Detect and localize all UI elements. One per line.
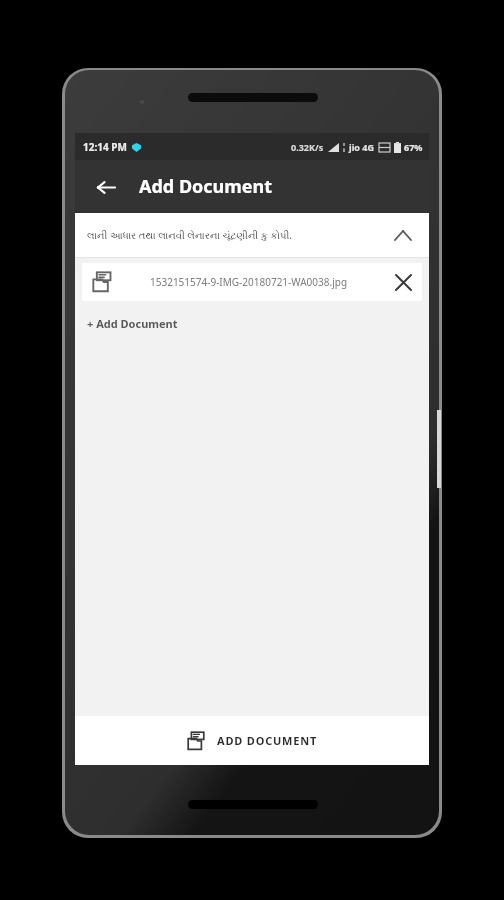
staticText: jio 4G xyxy=(349,141,375,153)
button[interactable]: Back xyxy=(87,169,123,205)
button[interactable]: ADD DOCUMENT xyxy=(75,716,429,765)
staticText: ADD DOCUMENT xyxy=(217,733,318,748)
button[interactable]: લાની આધાર તથા લાનવી લેનારના ચૂંટણીની કુ … xyxy=(75,213,429,257)
staticText: Add Document xyxy=(139,174,273,199)
button[interactable]: + Add Document xyxy=(75,306,429,340)
staticText: 67% xyxy=(404,141,423,153)
staticText: + Add Document xyxy=(87,316,178,331)
staticText: 0.32K/s xyxy=(291,141,324,153)
other: Collapse xyxy=(389,221,417,249)
button[interactable]: Remove document xyxy=(384,263,422,301)
staticText: 1532151574-9-IMG-20180721-WA0038.jpg xyxy=(150,275,348,289)
staticText: લાની આધાર તથા લાનવી લેનારના ચૂંટણીની કુ … xyxy=(87,228,293,242)
button[interactable]: 1532151574-9-IMG-20180721-WA0038.jpg xyxy=(82,263,422,301)
staticText: 12:14 PM xyxy=(83,140,127,154)
